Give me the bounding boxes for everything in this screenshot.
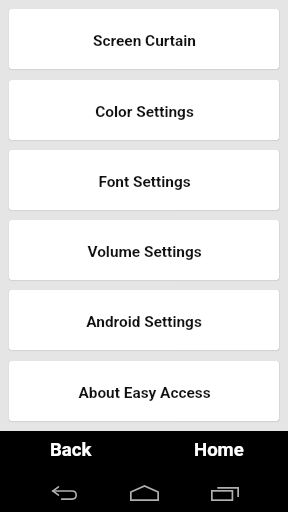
staticText: Screen Curtain	[93, 32, 196, 50]
button[interactable]: Home	[108, 464, 180, 512]
button[interactable]: Font Settings	[9, 150, 279, 210]
staticText: Home	[194, 439, 244, 461]
staticText: Color Settings	[95, 103, 194, 121]
button[interactable]: Back	[28, 431, 113, 464]
staticText: Back	[50, 439, 92, 461]
staticText: About Easy Access	[78, 384, 211, 402]
button[interactable]: Recent apps	[188, 464, 260, 512]
button[interactable]: Android Settings	[9, 290, 279, 350]
button[interactable]: Color Settings	[9, 80, 279, 140]
button[interactable]: About Easy Access	[9, 361, 279, 421]
button[interactable]: Home	[176, 431, 261, 464]
staticText: Font Settings	[98, 173, 191, 191]
button[interactable]: Screen Curtain	[9, 9, 279, 69]
button[interactable]: Back	[28, 464, 100, 512]
staticText: Volume Settings	[87, 243, 202, 261]
staticText: Android Settings	[86, 313, 202, 331]
button[interactable]: Volume Settings	[9, 220, 279, 280]
